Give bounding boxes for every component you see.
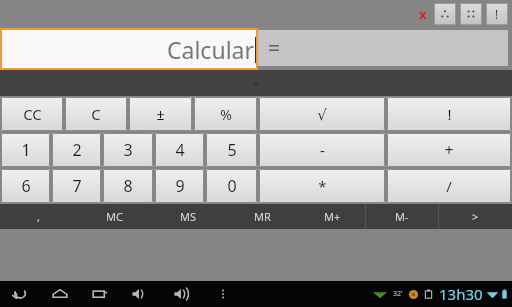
staticText: = [253, 76, 259, 90]
staticText: 32' [393, 289, 403, 299]
button[interactable]: 2 [52, 133, 101, 167]
staticText: > [472, 209, 479, 224]
staticText: √ [317, 106, 327, 123]
button[interactable]: / [387, 169, 511, 203]
button[interactable]: Volume down [130, 284, 150, 304]
staticText: ! [495, 6, 499, 22]
button[interactable]: ! [387, 97, 511, 131]
button[interactable]: √ [259, 97, 385, 131]
button[interactable]: 8 [103, 169, 153, 203]
button[interactable]: C [65, 97, 127, 131]
button[interactable]: Four dots layout [460, 3, 482, 25]
staticText: ! [447, 104, 452, 124]
button[interactable]: 0 [206, 169, 257, 203]
button[interactable]: CC [1, 97, 63, 131]
button[interactable]: % [194, 97, 257, 131]
button[interactable]: > [439, 204, 512, 229]
staticText: MC [106, 209, 123, 224]
button[interactable]: M- [366, 204, 438, 229]
button[interactable]: 4 [155, 133, 204, 167]
button[interactable]: - [259, 133, 385, 167]
staticText: ± [156, 105, 165, 124]
staticText: x [419, 5, 427, 23]
staticText: 2 [72, 139, 82, 161]
staticText: = [268, 34, 281, 63]
staticText: M+ [324, 209, 341, 224]
button[interactable]: 6 [1, 169, 50, 203]
button[interactable]: Recent apps [90, 284, 110, 304]
button[interactable]: 9 [155, 169, 204, 203]
staticText: M- [395, 209, 409, 224]
button[interactable]: = [258, 30, 508, 66]
button[interactable]: 5 [206, 133, 257, 167]
staticText: 6 [21, 175, 31, 197]
button[interactable]: 7 [52, 169, 101, 203]
staticText: MS [180, 209, 197, 224]
button[interactable]: ± [129, 97, 192, 131]
staticText: CC [23, 104, 42, 124]
button[interactable]: 3 [103, 133, 153, 167]
staticText: % [220, 105, 232, 124]
button[interactable]: MR [225, 204, 299, 229]
staticText: MR [254, 209, 271, 224]
button[interactable]: More options [214, 285, 232, 303]
staticText: + [444, 139, 454, 161]
staticText: 4 [175, 139, 185, 161]
button[interactable]: Volume up [172, 284, 192, 304]
staticText: 13h30 [439, 284, 483, 304]
button[interactable]: M+ [299, 204, 365, 229]
button[interactable]: MS [151, 204, 225, 229]
button[interactable]: + [387, 133, 511, 167]
staticText: C [91, 104, 101, 124]
staticText: Calcular [167, 34, 254, 65]
staticText: 9 [175, 175, 185, 197]
staticText: 8 [123, 175, 133, 197]
staticText: 1 [21, 139, 31, 161]
staticText: - [320, 140, 325, 160]
button[interactable]: , [0, 204, 77, 229]
button[interactable]: 1 [1, 133, 50, 167]
button[interactable]: Three dots layout [434, 3, 456, 25]
staticText: 3 [123, 139, 133, 161]
button[interactable]: MC [77, 204, 151, 229]
button[interactable]: Back [10, 284, 30, 304]
staticText: 0 [227, 175, 237, 197]
staticText: , [37, 209, 40, 224]
staticText: 5 [227, 139, 237, 161]
button[interactable]: Calcular [0, 28, 258, 70]
button[interactable]: * [259, 169, 385, 203]
button[interactable]: Info [486, 3, 508, 25]
staticText: / [446, 176, 452, 196]
button[interactable]: Home [50, 284, 70, 304]
staticText: * [318, 176, 327, 196]
staticText: 7 [72, 175, 82, 197]
button[interactable]: Close [419, 5, 427, 23]
